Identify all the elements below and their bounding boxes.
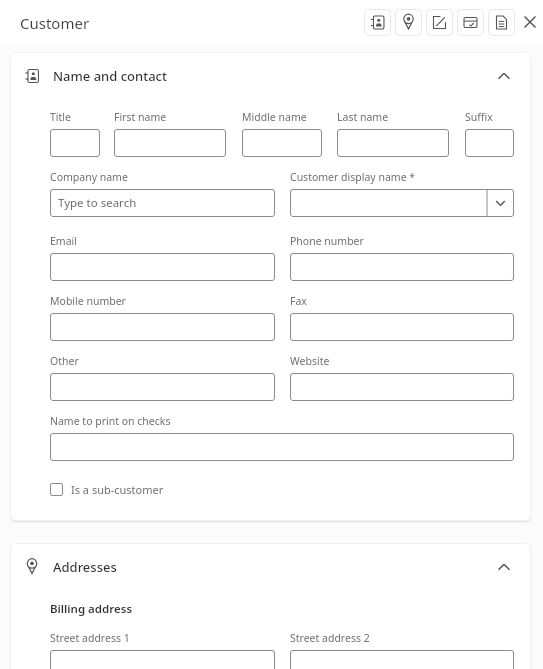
staticText: Other [50, 354, 79, 368]
staticText: Fax [290, 294, 307, 308]
button[interactable]: Notes [488, 9, 515, 36]
staticText: First name [114, 110, 167, 124]
button[interactable] [50, 433, 514, 461]
button[interactable]: Name and contact [10, 52, 531, 100]
button[interactable] [114, 129, 226, 157]
staticText: Customer display name * [290, 170, 416, 184]
button[interactable] [290, 189, 514, 217]
staticText: Company name [50, 170, 128, 184]
staticText: Street address 1 [50, 631, 130, 645]
staticText: Addresses [53, 558, 117, 576]
button[interactable]: Contact info [364, 9, 391, 36]
button[interactable] [290, 313, 514, 341]
staticText: Type to search [58, 195, 137, 211]
staticText: Phone number [290, 234, 364, 248]
staticText: Title [50, 110, 71, 124]
button[interactable]: Payment [457, 9, 484, 36]
button[interactable]: Is a sub-customer [50, 481, 164, 497]
staticText: Last name [337, 110, 389, 124]
button[interactable] [50, 253, 275, 281]
button[interactable]: Close [521, 13, 539, 31]
button[interactable]: Type to search [50, 189, 275, 217]
button[interactable] [290, 373, 514, 401]
staticText: Email [50, 234, 77, 248]
staticText: Name and contact [53, 67, 167, 85]
staticText: Billing address [50, 601, 133, 617]
staticText: Name to print on checks [50, 414, 171, 428]
staticText: Website [290, 354, 330, 368]
button[interactable]: Edit [426, 9, 453, 36]
staticText: Customer [20, 13, 90, 33]
button[interactable] [337, 129, 449, 157]
button[interactable] [50, 373, 275, 401]
button[interactable] [50, 313, 275, 341]
button[interactable] [50, 129, 100, 157]
button[interactable] [290, 253, 514, 281]
button[interactable] [465, 129, 514, 157]
button[interactable] [242, 129, 322, 157]
button[interactable]: Addresses [10, 543, 531, 591]
staticText: Is a sub-customer [71, 482, 164, 497]
staticText: Suffix [465, 110, 493, 124]
staticText: Middle name [242, 110, 307, 124]
staticText: Street address 2 [290, 631, 370, 645]
button[interactable]: Addresses [395, 9, 422, 36]
button[interactable] [290, 650, 514, 669]
button[interactable] [50, 650, 275, 669]
staticText: Mobile number [50, 294, 126, 308]
